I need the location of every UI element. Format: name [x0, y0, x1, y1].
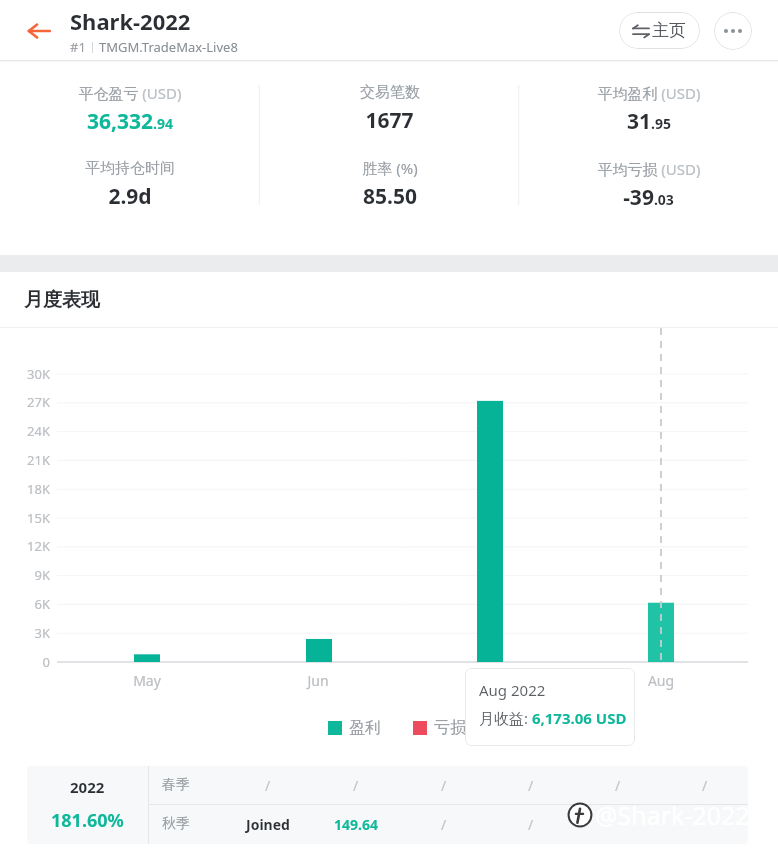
staticText: /	[265, 776, 271, 795]
staticText: 月收益: 6,173.06 USD	[479, 708, 627, 728]
staticText: 36,332.94	[87, 107, 173, 136]
staticText: /	[441, 815, 447, 834]
staticText: 平仓盈亏 (USD)	[78, 83, 182, 103]
staticText: TMGM.TradeMax-Live8	[99, 38, 238, 56]
staticText: 15K	[0, 509, 50, 527]
staticText: 主页	[652, 20, 686, 41]
staticText: @Shark-2022	[595, 798, 750, 832]
staticText: 85.50	[363, 182, 417, 211]
button[interactable]: Back	[22, 14, 56, 48]
staticText: 9K	[0, 566, 50, 584]
staticText: 交易笔数	[360, 83, 420, 102]
staticText: 31.95	[627, 107, 671, 136]
button[interactable]: More options	[714, 12, 752, 50]
staticText: 2022	[70, 777, 105, 797]
staticText: Aug	[631, 671, 691, 690]
staticText: /	[615, 776, 621, 795]
staticText: 12K	[0, 537, 50, 555]
button[interactable]: 2022	[27, 766, 748, 844]
staticText: /	[441, 776, 447, 795]
button[interactable]: 亏损	[413, 718, 466, 738]
button[interactable]: 盈利	[328, 718, 381, 738]
staticText: May	[117, 671, 177, 690]
staticText: #1	[70, 38, 86, 56]
staticText: 1677	[365, 106, 414, 135]
staticText: 亏损	[434, 718, 466, 738]
staticText: 春季	[162, 776, 224, 794]
staticText: Shark-2022	[70, 6, 191, 36]
staticText: 平均亏损 (USD)	[597, 159, 701, 179]
staticText: 0	[0, 653, 50, 671]
staticText: Aug 2022	[479, 680, 546, 700]
staticText: 盈利	[349, 718, 381, 738]
staticText: 3K	[0, 624, 50, 642]
staticText: 平均盈利 (USD)	[597, 83, 701, 103]
staticText: 149.64	[334, 815, 378, 834]
staticText: /	[353, 776, 359, 795]
staticText: /	[702, 776, 708, 795]
staticText: 21K	[0, 451, 50, 469]
button[interactable]: 主页	[619, 12, 700, 49]
staticText: 2.9d	[108, 182, 152, 211]
staticText: Jul	[460, 671, 520, 690]
staticText: /	[528, 815, 534, 834]
staticText: 秋季	[162, 815, 224, 833]
staticText: /	[528, 776, 534, 795]
staticText: 181.60%	[51, 808, 124, 833]
staticText: Jun	[288, 671, 348, 690]
staticText: 27K	[0, 393, 50, 411]
staticText: 平均持仓时间	[85, 159, 175, 178]
staticText: 24K	[0, 422, 50, 440]
staticText: 月度表现	[24, 288, 100, 312]
staticText: 18K	[0, 480, 50, 498]
staticText: -39.03	[623, 183, 674, 212]
staticText: 30K	[0, 365, 50, 383]
staticText: 胜率 (%)	[362, 158, 418, 178]
staticText: 6K	[0, 595, 50, 613]
staticText: Joined	[246, 815, 290, 834]
